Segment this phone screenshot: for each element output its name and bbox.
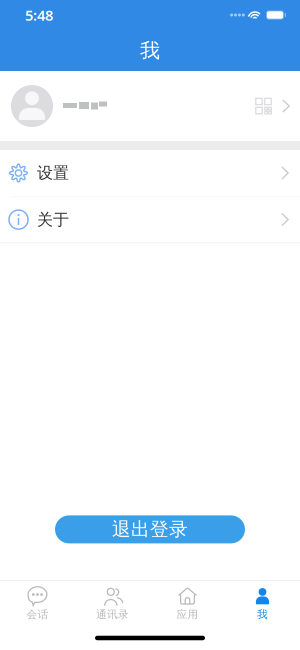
- button[interactable]: 通讯录: [75, 584, 150, 622]
- button[interactable]: 退出登录: [55, 515, 245, 543]
- button[interactable]: 设置: [0, 150, 300, 196]
- button[interactable]: 会话: [0, 584, 75, 622]
- button[interactable]: 关于: [0, 197, 300, 243]
- staticText: 设置: [37, 163, 69, 183]
- button[interactable]: 应用: [150, 584, 225, 622]
- button[interactable]: [0, 71, 300, 141]
- staticText: 5:48: [25, 5, 53, 25]
- staticText: 退出登录: [112, 518, 188, 541]
- staticText: 我: [257, 608, 268, 621]
- staticText: 应用: [176, 608, 198, 621]
- staticText: 会话: [26, 608, 48, 621]
- staticText: 关于: [37, 210, 69, 229]
- button[interactable]: 我: [225, 584, 300, 622]
- staticText: 我: [140, 38, 160, 63]
- staticText: 通讯录: [96, 608, 129, 621]
